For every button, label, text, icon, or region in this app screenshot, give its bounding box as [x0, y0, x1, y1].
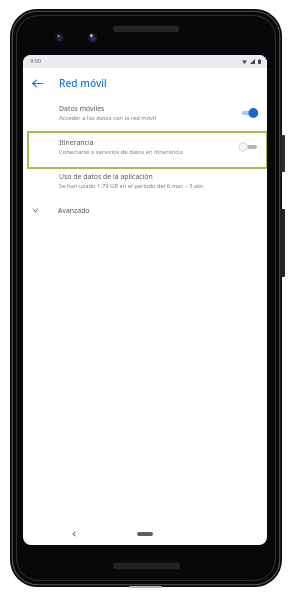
staticText: Avanzado — [58, 206, 90, 215]
button[interactable]: Back — [67, 527, 81, 541]
staticText: Uso de datos de la aplicación — [59, 172, 153, 181]
button[interactable]: Itinerancia — [23, 130, 267, 164]
button[interactable]: Back — [29, 75, 46, 92]
staticText: Red móvil — [59, 76, 107, 90]
staticText: Se han usado 1,79 GB en el periodo del 6… — [59, 182, 204, 190]
button[interactable]: Home — [137, 532, 153, 536]
staticText: Datos móviles — [59, 104, 105, 113]
staticText: Conectarse a servicios de datos en itine… — [59, 148, 183, 156]
button[interactable]: Datos móviles — [23, 96, 267, 130]
button[interactable]: Switch on — [237, 107, 259, 119]
staticText: Acceder a los datos con la red móvil — [59, 114, 157, 122]
button[interactable]: Switch off — [237, 141, 259, 153]
staticText: Itinerancia — [59, 138, 94, 147]
button[interactable]: Uso de datos de la aplicación — [23, 164, 267, 198]
button[interactable]: Avanzado — [23, 198, 267, 222]
staticText: 9:00 — [30, 57, 42, 65]
